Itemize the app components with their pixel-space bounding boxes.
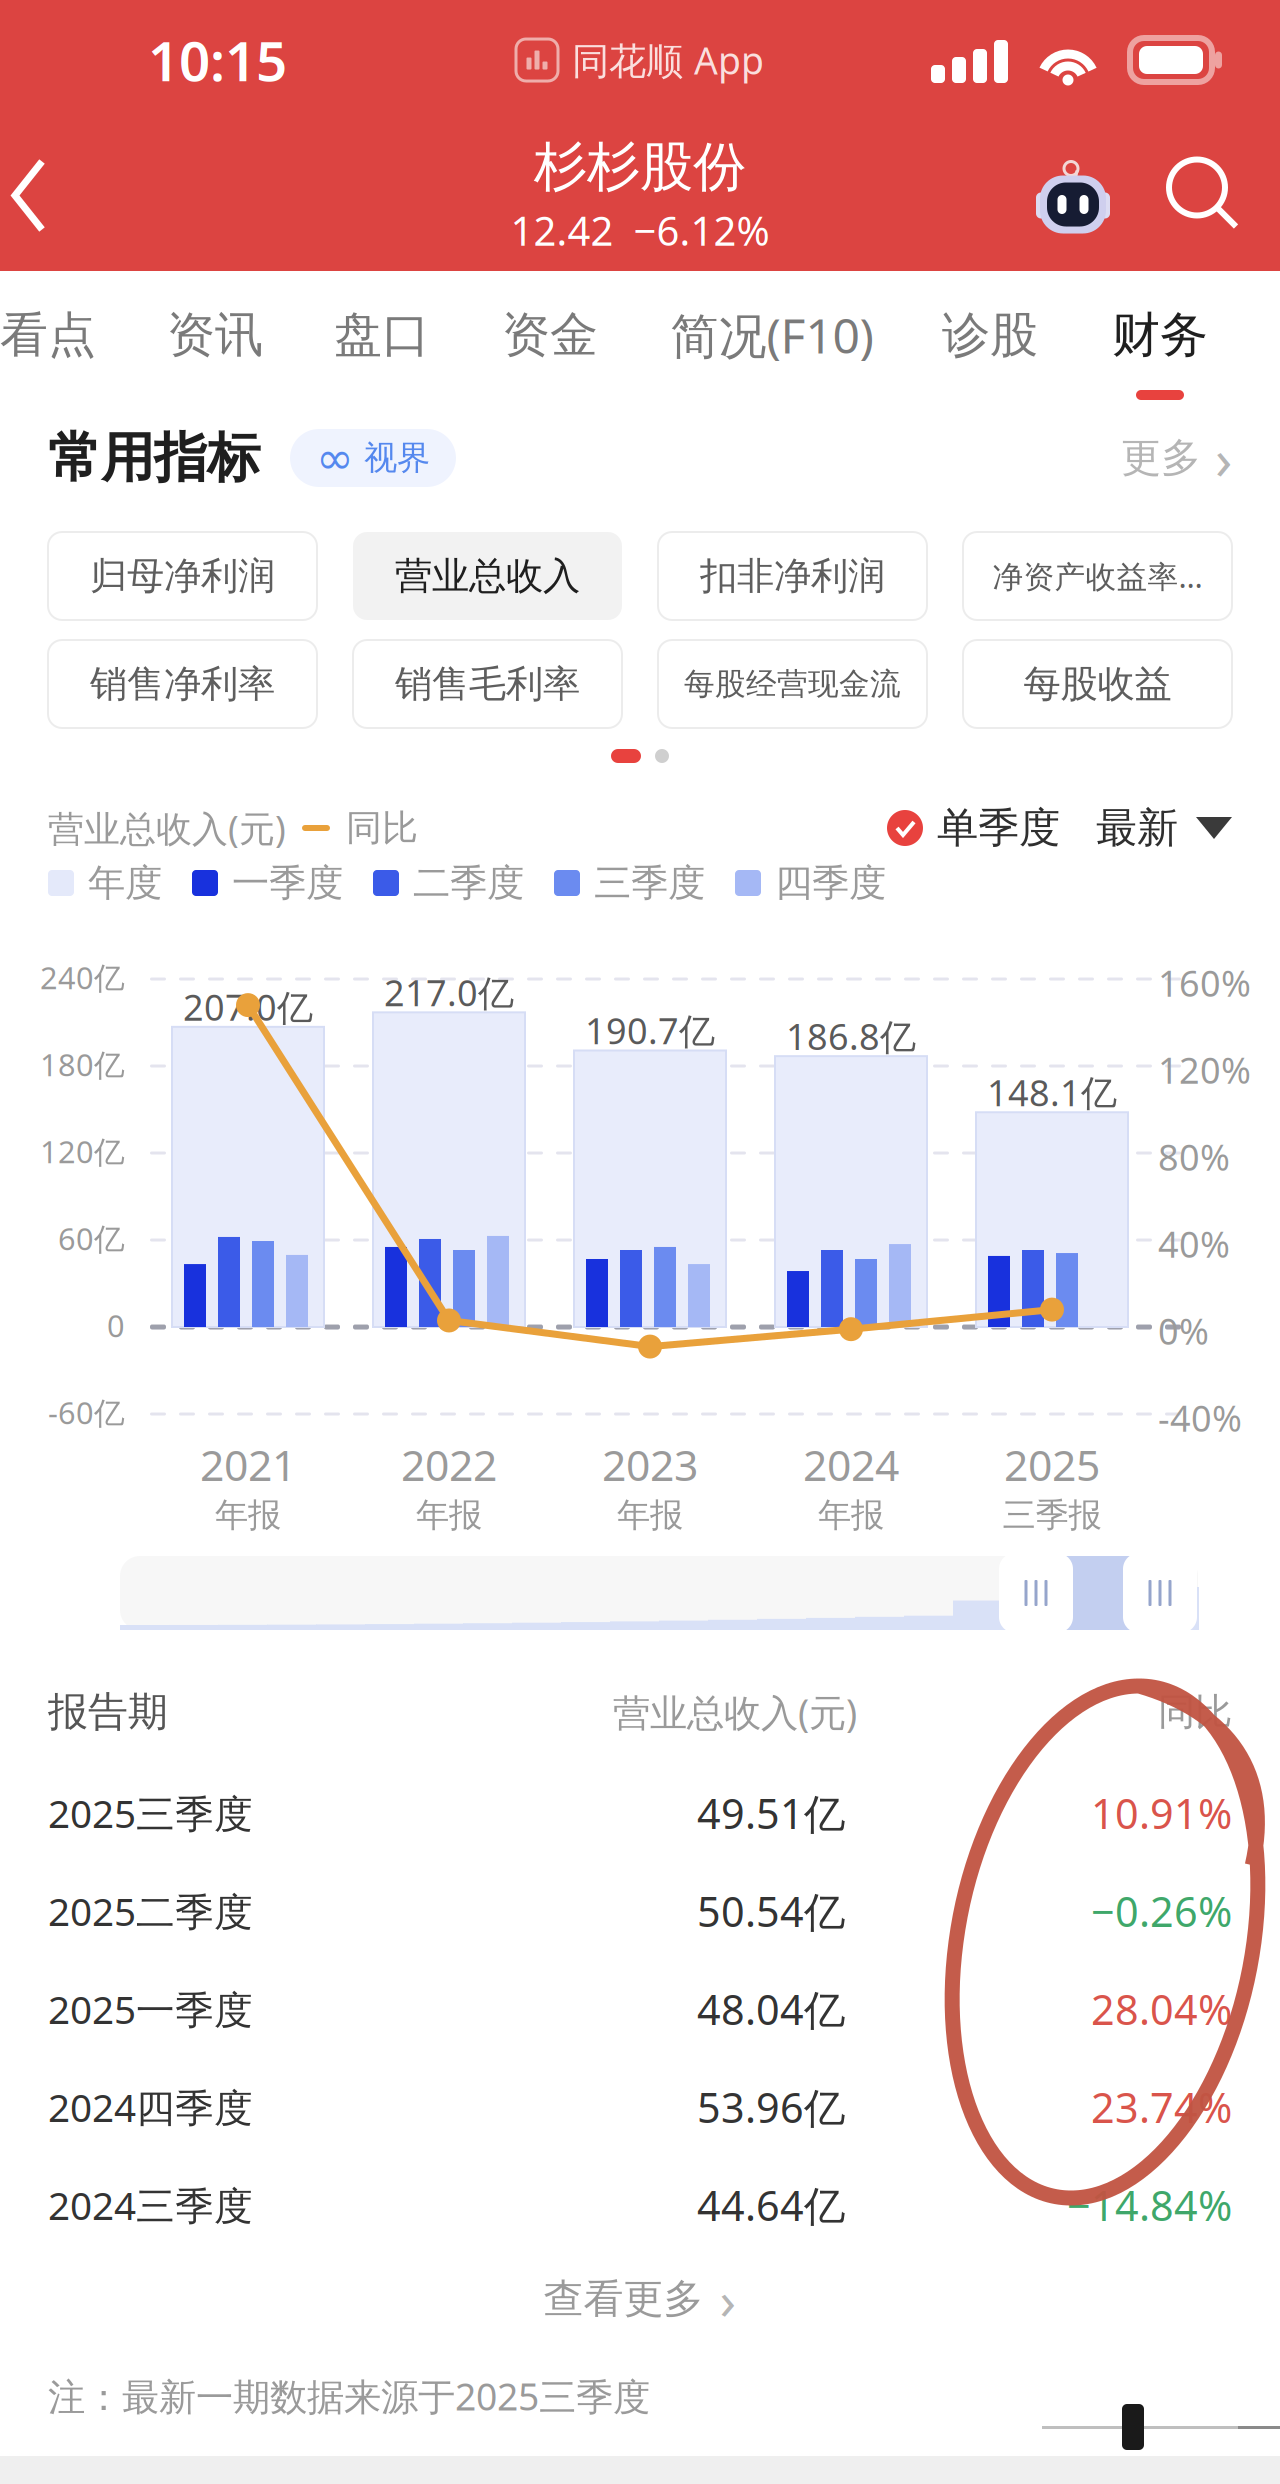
staticText: 2024	[803, 1436, 899, 1493]
staticText: 217.0亿	[384, 968, 514, 1016]
button[interactable]: 销售毛利率	[353, 640, 622, 728]
staticText: 财务	[1112, 305, 1208, 364]
button[interactable]: 2024四季度	[0, 2058, 1280, 2156]
button[interactable]: 盘口	[242, 277, 522, 407]
staticText: 资金	[502, 305, 598, 364]
staticText: 2024三季度	[48, 2179, 253, 2231]
staticText: -60亿	[48, 1392, 125, 1433]
staticText: 年报	[215, 1495, 281, 1536]
staticText: 10.91%	[1091, 1786, 1232, 1840]
button[interactable]: 每股经营现金流	[658, 640, 927, 728]
staticText: 180亿	[40, 1044, 125, 1085]
button[interactable]: Search	[1138, 130, 1268, 260]
staticText: 48.04亿	[697, 1982, 845, 2036]
staticText: 看点	[0, 305, 96, 364]
staticText: 营业总收入	[395, 553, 580, 599]
staticText: 2024四季度	[48, 2081, 253, 2133]
staticText: 2021	[200, 1436, 296, 1493]
staticText: 120%	[1158, 1046, 1251, 1094]
button[interactable]: 每股收益	[963, 640, 1232, 728]
button[interactable]: 营业总收入	[353, 532, 622, 620]
staticText: 杉杉股份	[534, 134, 746, 200]
staticText: 50.54亿	[697, 1884, 845, 1938]
button[interactable]: 资金	[410, 277, 690, 407]
staticText: 0	[107, 1305, 125, 1346]
staticText: 注：最新一期数据来源于2025三季度	[48, 2371, 650, 2421]
button[interactable]: 更多	[1121, 421, 1232, 495]
staticText: 年报	[617, 1495, 683, 1536]
staticText: 80%	[1158, 1133, 1230, 1181]
staticText: 年报	[416, 1495, 482, 1536]
staticText: −0.26%	[1091, 1884, 1232, 1938]
button[interactable]: 看点	[0, 277, 188, 407]
staticText: 三季度	[594, 860, 705, 906]
staticText: 148.1亿	[987, 1068, 1117, 1116]
staticText: 盘口	[334, 305, 430, 364]
staticText: 186.8亿	[786, 1012, 916, 1060]
staticText: 销售净利率	[90, 661, 275, 707]
staticText: 12.42 −6.12%	[510, 204, 769, 257]
button[interactable]: 净资产收益率…	[963, 532, 1232, 620]
staticText: 年度	[88, 860, 162, 906]
staticText: 2022	[401, 1436, 497, 1493]
staticText: 三季报	[1002, 1495, 1101, 1536]
staticText: 诊股	[942, 305, 1038, 364]
button[interactable]: 2025三季度	[0, 1764, 1280, 1862]
staticText: 常用指标	[48, 425, 260, 491]
staticText: 归母净利润	[90, 553, 275, 599]
button[interactable]: 2024三季度	[0, 2156, 1280, 2254]
staticText: 净资产收益率…	[992, 556, 1202, 596]
staticText: 44.64亿	[697, 2178, 845, 2232]
button[interactable]: ∞	[290, 429, 456, 487]
staticText: 一季度	[232, 860, 343, 906]
staticText: 2025三季度	[48, 1787, 253, 1839]
staticText: 同比	[346, 806, 418, 850]
staticText: 扣非净利润	[700, 553, 885, 599]
button[interactable]: 归母净利润	[48, 532, 317, 620]
staticText: 更多	[1121, 433, 1201, 482]
staticText: 销售毛利率	[395, 661, 580, 707]
staticText: 每股收益	[1023, 661, 1171, 707]
staticText: 单季度	[937, 803, 1060, 853]
button[interactable]: 2025二季度	[0, 1862, 1280, 1960]
staticText: 同花顺 App	[572, 35, 764, 85]
staticText: 2025一季度	[48, 1983, 253, 2035]
staticText: 每股经营现金流	[684, 665, 901, 703]
staticText: 23.74%	[1091, 2080, 1232, 2134]
staticText: 2025二季度	[48, 1885, 253, 1937]
button[interactable]: Back	[0, 139, 112, 251]
button[interactable]: 销售净利率	[48, 640, 317, 728]
button[interactable]: 财务	[1020, 277, 1280, 407]
staticText: 2023	[602, 1436, 698, 1493]
button[interactable]: 诊股	[850, 277, 1130, 407]
button[interactable]: AI assistant	[1008, 130, 1138, 260]
staticText: 简况(F10)	[670, 303, 873, 367]
staticText: ›	[719, 2264, 736, 2334]
button[interactable]: 资讯	[75, 277, 355, 407]
button[interactable]: 扣非净利润	[658, 532, 927, 620]
staticText: 营业总收入(元)	[613, 1687, 857, 1737]
staticText: 2025	[1004, 1436, 1100, 1493]
button[interactable]: 单季度	[887, 803, 1060, 853]
button[interactable]: 简况(F10)	[632, 277, 912, 407]
staticText: 240亿	[40, 957, 125, 998]
staticText: 28.04%	[1091, 1982, 1232, 2036]
staticText: 营业总收入(元)	[48, 804, 286, 852]
button[interactable]: 2025一季度	[0, 1960, 1280, 2058]
staticText: 视界	[364, 437, 430, 478]
staticText: 年报	[818, 1495, 884, 1536]
button[interactable]: 查看更多	[0, 2264, 1280, 2334]
staticText: 207.0亿	[183, 983, 313, 1031]
staticText: 查看更多	[543, 2274, 703, 2323]
staticText: 同比	[1158, 1689, 1232, 1735]
staticText: −14.84%	[1067, 2178, 1232, 2232]
staticText: 60亿	[58, 1218, 125, 1259]
staticText: 120亿	[40, 1131, 125, 1172]
staticText: -40%	[1158, 1394, 1242, 1442]
staticText: 49.51亿	[697, 1786, 845, 1840]
staticText: 二季度	[413, 860, 524, 906]
staticText: 四季度	[775, 860, 886, 906]
button[interactable]: 最新	[1060, 803, 1232, 853]
staticText: 40%	[1158, 1220, 1230, 1268]
staticText: 10:15	[148, 24, 287, 96]
